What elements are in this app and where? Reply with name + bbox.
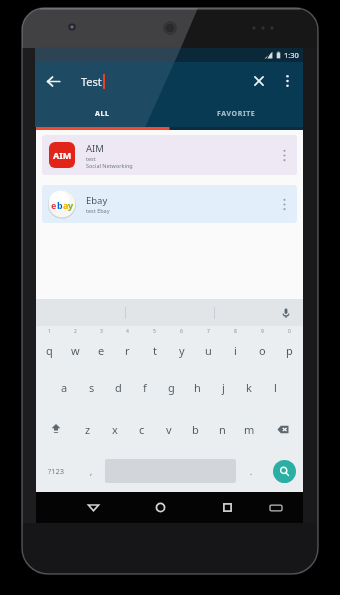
staticText: 1:30 [284,50,299,60]
staticText: ALL [95,109,110,119]
button[interactable]: 2 [62,326,88,367]
button[interactable]: Change keyboard [261,492,291,523]
button[interactable]: f [132,367,158,408]
staticText: AIM [53,149,72,161]
staticText: Social Networking [86,162,133,169]
button[interactable]: ALL [36,100,169,127]
button[interactable]: l [262,367,288,408]
staticText: y [179,343,185,358]
button[interactable]: ?123 [36,450,77,492]
staticText: b [57,199,63,211]
staticText: t [153,343,157,358]
staticText: 4 [126,328,129,335]
staticText: ?123 [48,466,65,476]
staticText: a [63,199,68,211]
staticText: x [112,422,118,437]
staticText: n [219,422,226,437]
button[interactable]: z [75,408,101,450]
staticText: q [46,343,53,358]
staticText: l [274,380,277,395]
staticText: b [192,422,199,437]
button[interactable]: AIM [42,135,297,175]
staticText: w [71,343,80,358]
staticText: k [246,380,252,395]
staticText: o [259,343,266,358]
button[interactable]: 9 [249,326,276,367]
button[interactable]: Shift [36,408,75,450]
staticText: 0 [288,328,291,335]
staticText: u [205,343,212,358]
staticText: 9 [261,328,264,335]
staticText: 3 [100,328,103,335]
staticText: e [98,343,105,358]
button[interactable]: c [128,408,155,450]
staticText: 7 [207,328,210,335]
button[interactable]: v [155,408,182,450]
staticText: y [68,199,73,211]
button[interactable]: h [184,367,210,408]
button[interactable]: Backspace [263,408,303,450]
button[interactable]: Back [60,492,127,523]
staticText: FAVORITE [217,109,256,119]
button[interactable]: 4 [114,326,141,367]
staticText: 5 [153,328,156,335]
button[interactable]: e [42,185,297,223]
button[interactable]: a [51,367,78,408]
button[interactable]: 5 [141,326,168,367]
staticText: 6 [180,328,183,335]
button[interactable]: 3 [88,326,114,367]
button[interactable]: Search [273,460,296,483]
staticText: z [85,422,91,437]
button[interactable]: 0 [276,326,303,367]
button[interactable]: s [78,367,105,408]
staticText: c [139,422,145,437]
button[interactable]: b [182,408,209,450]
staticText: test Ebay [86,207,110,214]
button[interactable]: x [101,408,128,450]
staticText: a [61,380,68,395]
staticText: 2 [74,328,77,335]
staticText: AIM [86,142,104,155]
staticText: 8 [234,328,237,335]
button[interactable]: m [236,408,263,450]
staticText: , [90,466,93,477]
button[interactable]: Recent apps [194,492,261,523]
button[interactable]: n [209,408,236,450]
staticText: p [286,343,293,358]
button[interactable]: FAVORITE [169,100,303,127]
button[interactable]: , [77,450,105,492]
staticText: e [51,199,57,211]
button[interactable]: Item options [275,146,293,164]
staticText: Test [81,74,102,89]
staticText: h [194,380,201,395]
staticText: m [244,422,255,437]
staticText: v [166,422,172,437]
button[interactable]: d [105,367,132,408]
button[interactable]: k [236,367,262,408]
staticText: test [86,155,96,162]
staticText: s [89,380,95,395]
button[interactable]: 7 [195,326,222,367]
staticText: j [222,380,225,395]
staticText: 1 [48,328,51,335]
button[interactable]: 6 [168,326,195,367]
staticText: r [125,343,130,358]
button[interactable]: Home [127,492,194,523]
button[interactable]: More options [274,68,300,94]
staticText: Ebay [86,194,108,207]
staticText: . [250,466,253,477]
button[interactable]: 8 [222,326,249,367]
button[interactable]: Clear search [244,66,274,96]
button[interactable]: j [210,367,236,408]
staticText: i [234,343,237,358]
button[interactable]: 1 [36,326,62,367]
staticText: g [168,380,175,395]
button[interactable]: g [158,367,184,408]
staticText: d [115,380,122,395]
button[interactable]: Voice input [278,305,294,321]
button[interactable]: Item options [275,195,293,213]
staticText: f [143,380,147,395]
button[interactable]: Navigate up [36,64,70,98]
